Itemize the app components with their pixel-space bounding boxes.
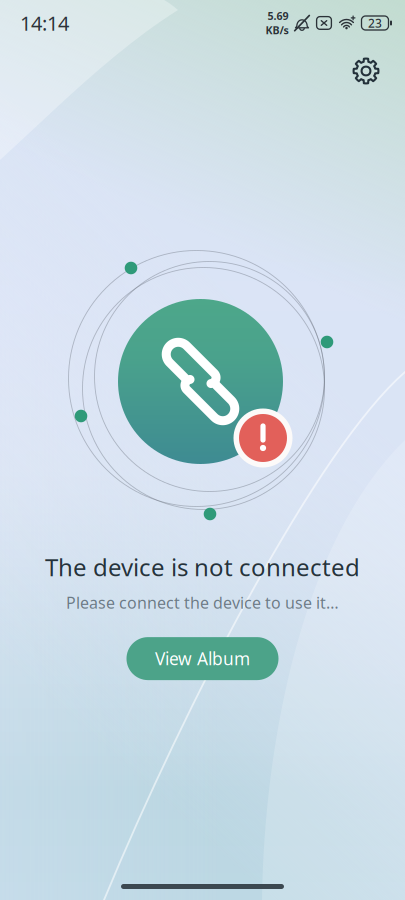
staticText: 14:14	[20, 10, 69, 36]
staticText: The device is not connected	[45, 551, 360, 583]
staticText: KB/s	[265, 23, 288, 37]
staticText: Please connect the device to use it…	[66, 592, 339, 613]
button[interactable]: Settings	[341, 46, 391, 96]
staticText: 23	[368, 15, 382, 31]
staticText: View Album	[155, 647, 250, 670]
button[interactable]: View Album	[126, 637, 278, 680]
staticText: 5.69	[267, 9, 288, 23]
